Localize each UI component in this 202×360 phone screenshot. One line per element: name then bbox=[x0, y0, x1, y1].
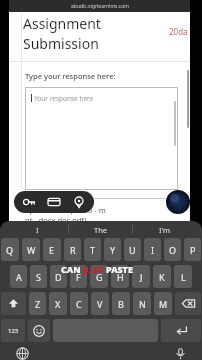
staticText: Z bbox=[35, 298, 41, 310]
staticText: This is optional! bbox=[25, 228, 77, 238]
button[interactable]: G bbox=[90, 265, 108, 288]
staticText: 123 bbox=[8, 327, 19, 335]
button[interactable]: K bbox=[153, 265, 171, 288]
staticText: T bbox=[90, 244, 96, 256]
staticText: abudic.vigrlearnlms.com bbox=[71, 3, 129, 10]
button[interactable]: Pointer bbox=[166, 190, 190, 214]
staticText: V bbox=[97, 298, 103, 310]
button[interactable]: Dictation bbox=[170, 347, 190, 360]
staticText: I bbox=[151, 244, 155, 256]
staticText: The bbox=[94, 225, 108, 235]
button[interactable]: O bbox=[164, 238, 181, 261]
staticText: Y bbox=[110, 244, 116, 256]
button[interactable]: Q bbox=[1, 238, 19, 261]
button[interactable]: X bbox=[49, 292, 67, 315]
staticText: D bbox=[55, 271, 62, 283]
button[interactable]: abudic.vigrlearnlms.com bbox=[9, 0, 190, 12]
staticText: upload a file (Video - m bbox=[25, 205, 106, 215]
button[interactable]: Z bbox=[29, 292, 46, 315]
staticText: CAN bbox=[61, 263, 83, 275]
staticText: X bbox=[55, 298, 61, 310]
button[interactable]: Location bbox=[71, 194, 87, 210]
button[interactable]: The bbox=[69, 221, 132, 238]
button[interactable]: C bbox=[70, 292, 88, 315]
button[interactable]: I'm bbox=[133, 221, 196, 238]
button[interactable]: Return bbox=[161, 319, 201, 342]
staticText: PASTE bbox=[106, 263, 133, 275]
button[interactable]: T bbox=[84, 238, 101, 261]
staticText: Submission bbox=[23, 34, 99, 53]
staticText: U bbox=[129, 244, 136, 256]
button[interactable]: Passwords bbox=[21, 194, 37, 210]
button[interactable]: Emoji bbox=[28, 319, 50, 342]
button[interactable]: P bbox=[184, 238, 201, 261]
button[interactable]: U bbox=[124, 238, 141, 261]
button[interactable]: B bbox=[112, 292, 130, 315]
staticText: JUST bbox=[83, 263, 106, 275]
button[interactable]: R bbox=[64, 238, 81, 261]
staticText: nt - docx,doc,pdf) bbox=[25, 215, 87, 225]
staticText: N bbox=[139, 298, 146, 310]
staticText: O bbox=[169, 244, 177, 256]
button[interactable]: Your response here bbox=[25, 87, 178, 190]
staticText: F bbox=[76, 271, 81, 283]
button[interactable]: M bbox=[154, 292, 172, 315]
button[interactable]: D bbox=[50, 265, 67, 288]
staticText: L bbox=[181, 271, 186, 283]
button[interactable]: L bbox=[174, 265, 192, 288]
staticText: W bbox=[27, 244, 36, 256]
button[interactable]: V bbox=[91, 292, 109, 315]
staticText: Assignment bbox=[23, 14, 101, 33]
staticText: P bbox=[190, 244, 196, 256]
staticText: R bbox=[70, 244, 76, 256]
button[interactable]: H bbox=[111, 265, 129, 288]
staticText: H bbox=[117, 271, 124, 283]
staticText: Type your response here: bbox=[25, 71, 116, 81]
button[interactable]: Next keyboard bbox=[12, 347, 32, 360]
staticText: 20da bbox=[169, 26, 188, 37]
button[interactable]: Delete bbox=[175, 292, 201, 315]
staticText: J bbox=[140, 271, 143, 283]
staticText: C bbox=[76, 298, 82, 310]
button[interactable]: W bbox=[22, 238, 40, 261]
button[interactable]: J bbox=[132, 265, 150, 288]
button[interactable]: F bbox=[70, 265, 87, 288]
staticText: G bbox=[96, 271, 103, 283]
button[interactable]: S bbox=[30, 265, 47, 288]
button[interactable]: Scan credit card bbox=[46, 194, 62, 210]
staticText: E bbox=[49, 244, 55, 256]
staticText: Q bbox=[6, 244, 14, 256]
staticText: B bbox=[118, 298, 124, 310]
button[interactable]: Y bbox=[104, 238, 121, 261]
button[interactable]: N bbox=[133, 292, 151, 315]
staticText: I bbox=[36, 225, 39, 235]
staticText: K bbox=[159, 271, 165, 283]
staticText: M bbox=[159, 298, 168, 310]
staticText: Your response here bbox=[34, 94, 94, 103]
button[interactable]: A bbox=[10, 265, 27, 288]
button[interactable]: I bbox=[144, 238, 161, 261]
staticText: A bbox=[16, 271, 22, 283]
button[interactable]: Shift bbox=[1, 292, 26, 315]
staticText: I'm bbox=[159, 225, 171, 235]
button[interactable]: I bbox=[6, 221, 68, 238]
staticText: S bbox=[36, 271, 41, 283]
button[interactable]: E bbox=[43, 238, 61, 261]
button[interactable]: Numbers bbox=[1, 319, 25, 342]
